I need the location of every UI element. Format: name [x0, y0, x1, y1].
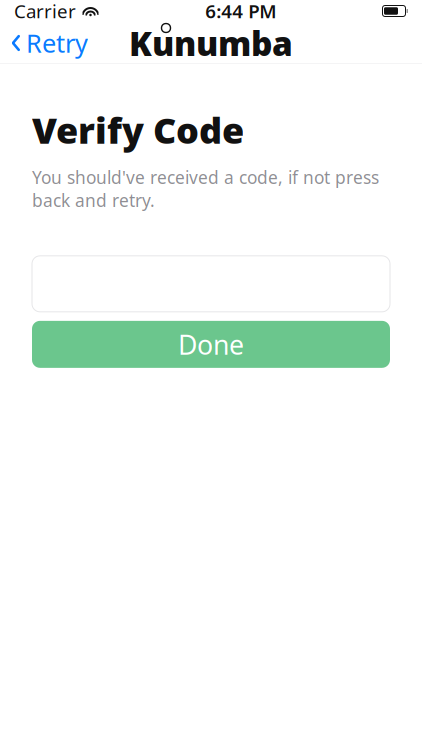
staticText: You should've received a code, if not pr…	[32, 166, 379, 212]
staticText: Carrier	[14, 0, 76, 23]
staticText: Retry	[26, 26, 88, 60]
staticText: Verify Code	[32, 106, 244, 154]
staticText: Kunumba	[129, 21, 293, 65]
button[interactable]: Done	[32, 321, 390, 368]
staticText: Done	[178, 327, 244, 362]
button[interactable]: Retry	[0, 20, 88, 66]
staticText: 6:44 PM	[205, 0, 276, 23]
